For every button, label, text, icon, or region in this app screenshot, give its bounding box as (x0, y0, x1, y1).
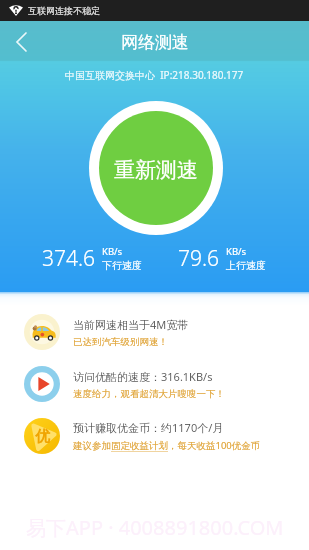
staticText: 访问优酷的速度：316.1KB/s (73, 369, 213, 384)
button[interactable]: 访问优酷的速度：316.1KB/s (0, 358, 309, 410)
staticText: 预计赚取优金币：约1170个/月 (73, 420, 224, 435)
staticText: 下行速度 (102, 259, 142, 272)
staticText: 上行速度 (226, 259, 266, 272)
staticText: 79.6 (178, 244, 220, 273)
staticText: 建议参加固定收益计划，每天收益100优金币 (73, 439, 261, 452)
staticText: KB/s (226, 245, 247, 258)
staticText: 已达到汽车级别网速！ (73, 336, 168, 348)
staticText: 优 (35, 427, 50, 446)
staticText: 网络测速 (121, 32, 189, 53)
staticText: 互联网连接不稳定 (28, 5, 100, 16)
button[interactable]: Back (5, 26, 37, 58)
staticText: 易下APP · 4008891800.COM (26, 514, 284, 541)
staticText: 当前网速相当于4M宽带 (73, 317, 189, 332)
staticText: 中国互联网交换中心 IP:218.30.180.177 (65, 68, 244, 82)
button[interactable]: 当前网速相当于4M宽带 (0, 306, 309, 358)
staticText: 374.6 (42, 244, 96, 273)
button[interactable]: 重新测速 (99, 111, 213, 225)
staticText: 速度给力，观看超清大片嗖嗖一下！ (73, 388, 225, 400)
staticText: 重新测速 (114, 157, 198, 183)
button[interactable]: 优 (0, 410, 309, 462)
staticText: KB/s (102, 245, 123, 258)
